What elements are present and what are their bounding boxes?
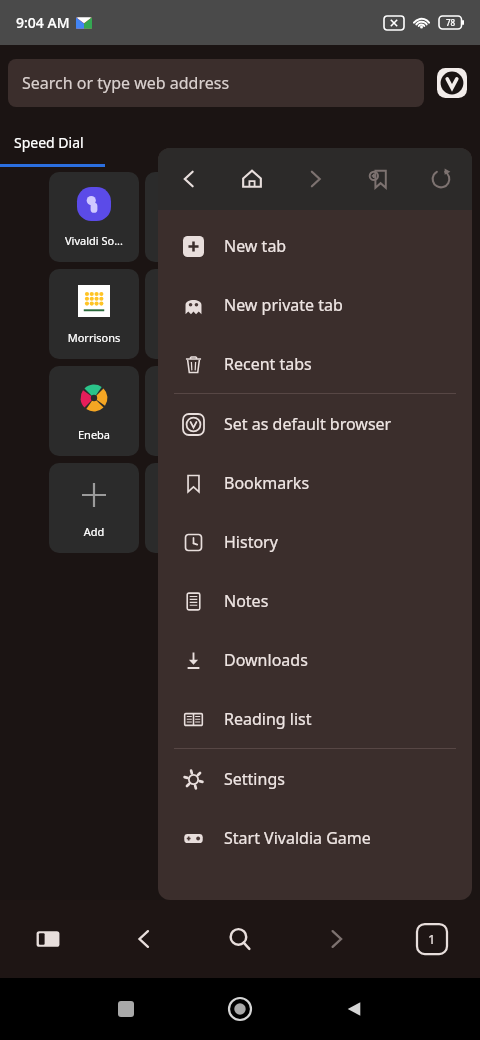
button[interactable] bbox=[145, 172, 235, 262]
button[interactable]: Reading list bbox=[158, 689, 472, 748]
staticText: Eneba bbox=[49, 427, 139, 442]
button[interactable]: Search bbox=[192, 900, 288, 978]
button[interactable] bbox=[145, 269, 235, 359]
button[interactable]: Recents bbox=[69, 978, 183, 1040]
button[interactable]: Search or type web address bbox=[8, 59, 424, 107]
button[interactable]: Panels bbox=[0, 900, 96, 978]
button[interactable]: Recent tabs bbox=[158, 334, 472, 393]
staticText: Bookmarks bbox=[224, 472, 310, 494]
button[interactable]: Bookmarks bbox=[158, 453, 472, 512]
button[interactable]: Back bbox=[158, 148, 220, 210]
button[interactable]: New private tab bbox=[158, 275, 472, 334]
staticText: Reading list bbox=[224, 708, 312, 730]
button[interactable]: Add bbox=[49, 463, 139, 553]
button[interactable]: Home bbox=[220, 148, 283, 210]
button[interactable]: Back bbox=[297, 978, 411, 1040]
staticText: Search or type web address bbox=[22, 72, 230, 94]
staticText: Morrisons bbox=[49, 330, 139, 345]
button[interactable]: Forward bbox=[283, 148, 346, 210]
button[interactable]: Set as default browser bbox=[158, 394, 472, 453]
button[interactable]: Speed Dial bbox=[0, 117, 105, 167]
staticText: Start Vivaldia Game bbox=[224, 827, 371, 849]
button[interactable]: Tabs bbox=[384, 900, 480, 978]
staticText: 9:04 AM bbox=[16, 13, 70, 32]
button[interactable]: Reload bbox=[409, 148, 472, 210]
staticText: New tab bbox=[224, 235, 287, 257]
staticText: 78 bbox=[446, 17, 456, 28]
button[interactable] bbox=[145, 366, 235, 456]
staticText: 1 bbox=[428, 930, 436, 948]
button[interactable]: Settings bbox=[158, 749, 472, 808]
staticText: Downloads bbox=[224, 649, 308, 671]
staticText: Set as default browser bbox=[224, 413, 392, 435]
staticText: History bbox=[224, 531, 278, 553]
staticText: Recent tabs bbox=[224, 353, 312, 375]
staticText: Settings bbox=[224, 768, 285, 790]
button[interactable]: Start Vivaldia Game bbox=[158, 808, 472, 867]
button[interactable]: Forward bbox=[288, 900, 384, 978]
button[interactable]: Eneba bbox=[49, 366, 139, 456]
button[interactable]: Downloads bbox=[158, 630, 472, 689]
button[interactable]: Add bookmark bbox=[346, 148, 409, 210]
button[interactable]: Back bbox=[96, 900, 192, 978]
button[interactable]: Home bbox=[183, 978, 297, 1040]
button[interactable]: Vivaldi So... bbox=[49, 172, 139, 262]
button[interactable]: Morrisons bbox=[49, 269, 139, 359]
button[interactable]: Notes bbox=[158, 571, 472, 630]
button[interactable]: History bbox=[158, 512, 472, 571]
button[interactable]: New tab bbox=[158, 216, 472, 275]
button[interactable]: Vivaldi menu bbox=[424, 59, 480, 107]
staticText: Vivaldi So... bbox=[49, 233, 139, 248]
staticText: Speed Dial bbox=[14, 133, 84, 152]
staticText: Notes bbox=[224, 590, 269, 612]
staticText: Add bbox=[49, 524, 139, 539]
staticText: New private tab bbox=[224, 294, 343, 316]
button[interactable] bbox=[145, 463, 235, 553]
